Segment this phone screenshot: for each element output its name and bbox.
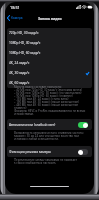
button[interactable]: Switch on [78, 122, 88, 128]
staticText: 1080p HD, 30 кадр/с [9, 41, 41, 45]
staticText: – 40 МБ при 720p HD, 30 кадр/с (экономия… [14, 88, 82, 91]
button[interactable]: 1080p HD, 30 кадр/с [7, 38, 92, 48]
staticText: Переключение между камерами не приведет [14, 158, 77, 161]
staticText: Фиксация режима камеры [9, 150, 52, 154]
staticText: 4K, 30 кадр/с [9, 71, 30, 75]
staticText: Запись видео [38, 16, 62, 21]
staticText: 1080p HD, 60 кадр/с [9, 51, 41, 55]
staticText: 720p HD, 30 кадр/с [9, 31, 39, 35]
staticText: условиях слабой освещенности. [14, 137, 59, 140]
staticText: Возможность автоматического снижения час… [14, 131, 84, 134]
button[interactable]: 4K, 30 кадр/с [7, 68, 92, 78]
staticText: 18:51 [10, 5, 20, 10]
button[interactable]: Switch off [78, 149, 88, 155]
staticText: – 190 МБ при 4K, 30 кадр/с (выше разреше… [14, 100, 79, 103]
staticText: кадров с 30 до 24 для улучшения качества… [14, 134, 79, 137]
staticText: 4K, 60 кадр/с [9, 81, 30, 85]
staticText: Автоматически (слабый свет) [9, 123, 56, 127]
staticText: – 90 МБ при 1080p HD, 60 кадр/с (плавнее… [14, 94, 73, 97]
staticText: к сбросу выбранных настроек. [14, 161, 57, 164]
staticText: – 440 МБ при 4K, 60 кадр/с (выше разреше… [14, 103, 79, 106]
button[interactable]: Камера [7, 15, 23, 21]
button[interactable]: Фиксация режима камеры [7, 146, 92, 157]
button[interactable]: 4K, 60 кадр/с [7, 78, 92, 88]
button[interactable]: Автоматически (слабый свет) [7, 119, 92, 130]
staticText: Форматы HEVC и ProRes поддерживаются не … [14, 109, 86, 112]
button[interactable]: 720p HD, 30 кадр/с [7, 28, 92, 38]
staticText: Минута видео составит примерно: [14, 85, 62, 88]
button[interactable]: 1080p HD, 60 кадр/с [7, 48, 92, 58]
staticText: – 135 МБ при 4K, 24 кадр/с (стиль кино) [14, 97, 69, 100]
staticText: 4K, 24 кадр/с [9, 61, 30, 65]
staticText: плавнее) [14, 106, 27, 109]
staticText: – 60 МБ при 1080p HD, 30 кадр/с (по умол… [14, 91, 82, 94]
staticText: Камера [11, 16, 23, 20]
staticText: устройствами. [14, 112, 34, 115]
button[interactable]: 4K, 24 кадр/с [7, 58, 92, 68]
